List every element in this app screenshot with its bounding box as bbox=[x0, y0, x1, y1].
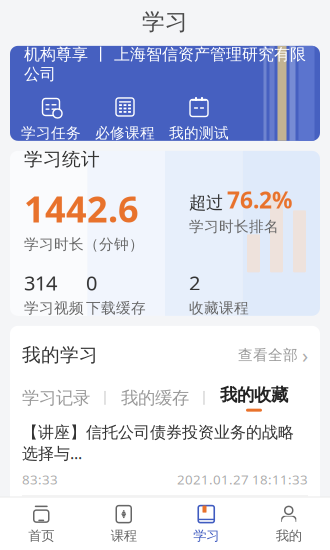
button[interactable]: 我的收藏 bbox=[220, 384, 288, 412]
button[interactable]: 首页 bbox=[0, 498, 82, 550]
button[interactable]: 学习 bbox=[165, 498, 247, 550]
staticText: 76.2% bbox=[227, 185, 292, 215]
button[interactable]: 我的测试 bbox=[162, 94, 236, 144]
staticText: 1442.6 bbox=[24, 185, 139, 232]
staticText: 我的缓存 bbox=[121, 387, 189, 409]
staticText: 学习时长排名 bbox=[189, 218, 279, 236]
staticText: 0 bbox=[86, 269, 97, 296]
button[interactable]: 【精品课程】信用研究员的来源 bbox=[22, 496, 308, 550]
button[interactable]: 必修课程 bbox=[88, 94, 162, 144]
staticText: › bbox=[302, 342, 308, 368]
staticText: 学习记录 bbox=[22, 387, 90, 409]
button[interactable]: 查看全部 bbox=[238, 340, 308, 370]
staticText: 314 bbox=[24, 269, 57, 296]
staticText: 机构尊享 丨 上海智信资产管理研究有限公司 bbox=[24, 45, 306, 84]
staticText: 丨 bbox=[98, 389, 113, 407]
staticText: 首页 bbox=[28, 528, 54, 544]
staticText: 学习视频 bbox=[24, 299, 84, 317]
staticText: 学习统计 bbox=[24, 148, 100, 171]
staticText: 2021.01.26 16:02:21 bbox=[177, 532, 308, 550]
staticText: 查看全部 bbox=[238, 346, 298, 364]
staticText: 必修课程 bbox=[95, 124, 155, 142]
staticText: 11:46 bbox=[22, 532, 58, 550]
staticText: 2021.01.27 18:11:33 bbox=[177, 471, 308, 488]
staticText: 【讲座】信托公司债券投资业务的战略选择与... bbox=[22, 423, 294, 464]
staticText: 【精品课程】信用研究员的来源 bbox=[22, 505, 246, 525]
button[interactable]: 我的缓存 bbox=[121, 385, 189, 411]
staticText: 2 bbox=[189, 269, 200, 296]
staticText: 我的收藏 bbox=[220, 384, 288, 406]
staticText: 收藏课程 bbox=[189, 299, 249, 317]
staticText: 学习任务 bbox=[21, 124, 81, 142]
staticText: 学习 bbox=[142, 8, 188, 36]
staticText: 超过 bbox=[189, 192, 223, 213]
staticText: 学习 bbox=[193, 528, 219, 544]
button[interactable]: 学习记录 bbox=[22, 385, 90, 411]
button[interactable]: 【讲座】信托公司债券投资业务的战略选择与... bbox=[22, 414, 308, 496]
staticText: 丨 bbox=[197, 389, 212, 407]
staticText: 学习时长（分钟） bbox=[24, 235, 144, 253]
staticText: 下载缓存 bbox=[86, 299, 146, 317]
button[interactable]: 学习任务 bbox=[14, 94, 88, 144]
staticText: 83:33 bbox=[22, 471, 58, 488]
staticText: 我的 bbox=[276, 528, 302, 544]
staticText: 我的测试 bbox=[169, 124, 229, 142]
staticText: 课程 bbox=[111, 528, 137, 544]
button[interactable]: 课程 bbox=[82, 498, 165, 550]
button[interactable]: 我的 bbox=[247, 498, 330, 550]
staticText: 我的学习 bbox=[22, 344, 98, 367]
